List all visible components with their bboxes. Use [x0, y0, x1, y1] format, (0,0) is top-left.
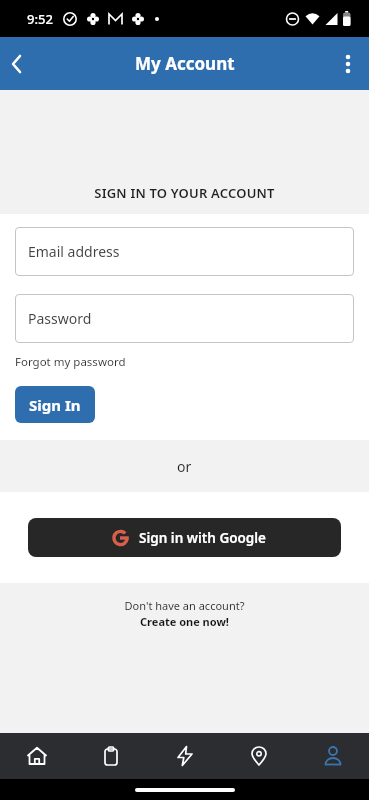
button[interactable] [74, 733, 148, 779]
staticText: Password [28, 309, 92, 328]
staticText: 9:52 [27, 10, 53, 28]
staticText: My Account [135, 52, 235, 75]
button[interactable]: Sign In [15, 386, 95, 423]
staticText: Sign in with Google [139, 529, 267, 547]
button[interactable]: Password [15, 294, 354, 343]
button[interactable] [0, 733, 74, 779]
staticText: Email address [28, 242, 120, 261]
button[interactable]: Sign in with Google [28, 518, 341, 557]
button[interactable] [325, 42, 369, 86]
staticText: Don't have an account? [0, 598, 369, 613]
button[interactable] [222, 733, 296, 779]
button[interactable] [148, 733, 222, 779]
button[interactable]: Forgot my password [15, 354, 126, 370]
button[interactable]: Email address [15, 227, 354, 276]
staticText: or [177, 457, 192, 476]
staticText: Sign In [29, 395, 81, 415]
button[interactable] [0, 42, 34, 86]
button[interactable] [296, 733, 369, 779]
staticText: SIGN IN TO YOUR ACCOUNT [0, 184, 369, 202]
button[interactable]: Create one now! [0, 614, 369, 629]
